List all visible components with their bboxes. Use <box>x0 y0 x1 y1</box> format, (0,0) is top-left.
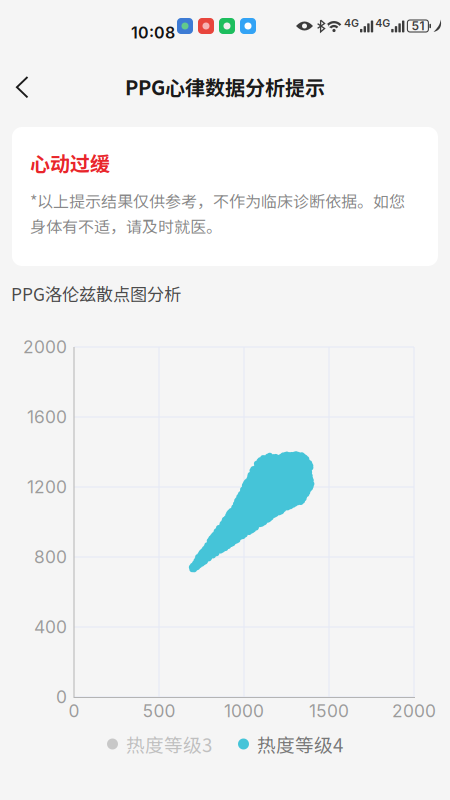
staticText: 热度等级4 <box>257 730 343 757</box>
staticText: 51 <box>411 19 424 33</box>
staticText: 1000 <box>224 700 264 721</box>
staticText: 1500 <box>309 700 349 721</box>
staticText: 4G <box>344 16 359 29</box>
staticText: PPG洛伦兹散点图分析 <box>11 281 181 306</box>
staticText: 500 <box>142 700 175 721</box>
button[interactable]: Back <box>0 48 47 103</box>
staticText: 0 <box>56 686 67 707</box>
staticText: 心动过缓 <box>30 148 110 177</box>
staticText: 热度等级3 <box>126 730 212 757</box>
staticText: 2000 <box>23 336 67 357</box>
staticText: 4G <box>375 16 390 29</box>
staticText: 1600 <box>27 406 67 427</box>
staticText: 800 <box>34 546 67 567</box>
staticText: 0 <box>68 700 79 721</box>
staticText: 2000 <box>392 700 436 721</box>
staticText: *以上提示结果仅供参考，不作为临床诊断依据。如您身体有不适，请及时就医。 <box>30 189 405 237</box>
staticText: 10:08 <box>131 23 175 42</box>
staticText: PPG心律数据分析提示 <box>125 72 325 101</box>
staticText: 1200 <box>27 476 67 497</box>
staticText: 400 <box>34 616 67 637</box>
